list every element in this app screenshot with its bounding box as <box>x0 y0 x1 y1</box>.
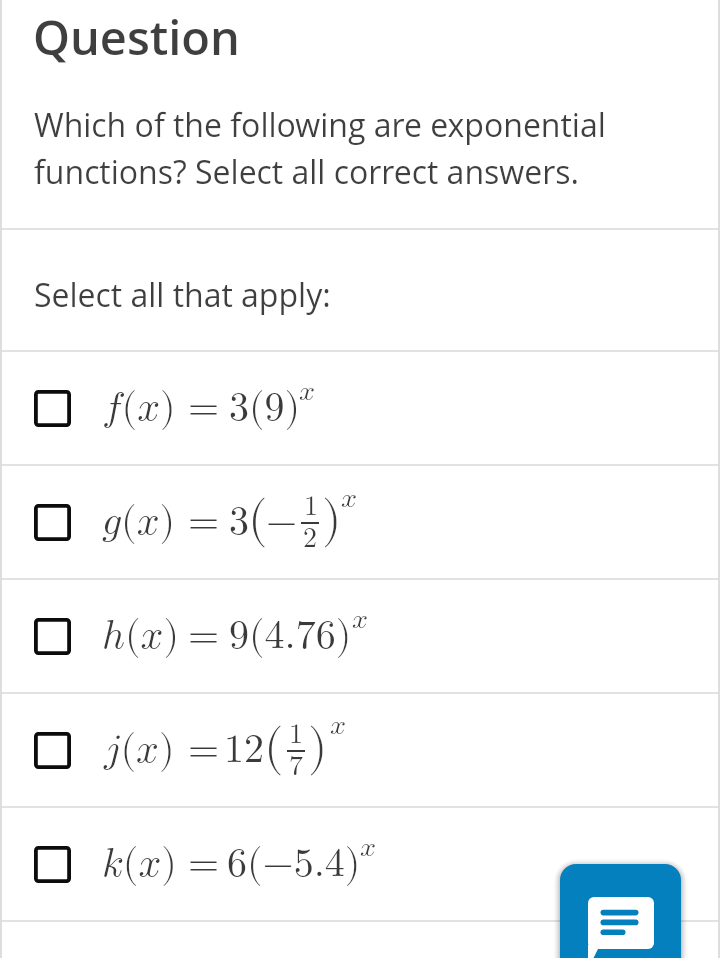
staticText: ) <box>308 723 328 773</box>
staticText: 𝑓(𝑥) <box>102 388 176 428</box>
button[interactable]: Select answer option <box>34 732 71 769</box>
staticText: 𝑘(𝑥) <box>102 844 177 884</box>
staticText: 𝑥 <box>330 711 347 739</box>
staticText: = <box>188 388 220 428</box>
staticText: 1 <box>289 720 304 748</box>
staticText: = <box>188 844 220 884</box>
staticText: ℎ(𝑥) <box>102 616 180 656</box>
button[interactable]: Select answer option <box>34 390 71 427</box>
staticText: ) <box>322 495 342 545</box>
button[interactable]: Open chat <box>560 864 681 958</box>
staticText: = <box>188 730 220 770</box>
button[interactable]: Select answer option <box>0 352 720 464</box>
button[interactable]: Select answer option <box>0 466 720 578</box>
staticText: − <box>266 502 298 542</box>
staticText: 𝑥 <box>360 833 377 861</box>
staticText: 9(4.76) <box>229 616 352 656</box>
staticText: Select all that apply: <box>34 273 331 317</box>
staticText: ( <box>264 723 284 773</box>
staticText: 𝑔(𝑥) <box>102 502 176 542</box>
staticText: = <box>188 502 220 542</box>
button[interactable]: Select answer option <box>0 694 720 806</box>
button[interactable]: Select answer option <box>0 808 720 920</box>
staticText: 3(9) <box>229 388 301 428</box>
staticText: ( <box>248 495 268 545</box>
button[interactable]: Select answer option <box>34 504 71 541</box>
staticText: 6(−5.4) <box>227 844 361 884</box>
staticText: 𝑥 <box>341 484 358 512</box>
button[interactable]: Select answer option <box>34 618 71 655</box>
staticText: 2 <box>303 524 318 552</box>
button[interactable]: Select answer option <box>0 580 720 692</box>
staticText: Question <box>33 5 240 69</box>
staticText: = <box>188 616 220 656</box>
staticText: Which of the following are exponential f… <box>34 103 606 194</box>
staticText: 1 <box>304 492 319 520</box>
staticText: 7 <box>289 752 304 780</box>
staticText: 𝑥 <box>352 605 369 633</box>
staticText: 12 <box>224 730 264 770</box>
button[interactable]: Select answer option <box>34 846 71 883</box>
staticText: 𝑗(𝑥) <box>104 730 175 770</box>
staticText: 3 <box>229 502 249 542</box>
staticText: 𝑥 <box>299 377 316 405</box>
